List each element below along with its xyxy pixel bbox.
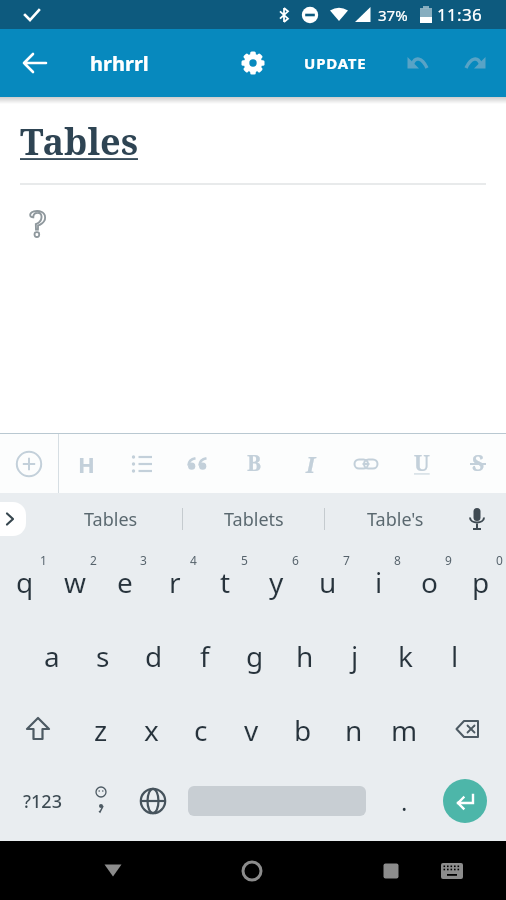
button[interactable] [0,502,26,536]
staticText: S [472,449,485,478]
staticText: p [472,563,490,601]
button[interactable] [338,434,394,493]
staticText: B [247,449,262,478]
button[interactable]: y [251,545,302,619]
staticText: Tables [84,507,138,532]
button[interactable]: u [302,545,353,619]
button[interactable]: l [430,619,480,693]
button[interactable]: g [230,619,280,693]
button[interactable]: b [277,693,328,767]
staticText: b [294,711,312,749]
button[interactable]: S [450,434,506,493]
button[interactable]: p [455,545,506,619]
button[interactable] [432,851,472,891]
staticText: f [200,637,210,675]
staticText: hrhrrl [90,50,149,77]
staticText: U [414,449,430,478]
button[interactable]: d [128,619,179,693]
staticText: 4 [190,552,197,568]
button[interactable]: z [76,693,126,767]
staticText: h [296,637,314,675]
button[interactable]: B [226,434,282,493]
button[interactable] [0,434,58,493]
button[interactable] [0,693,76,767]
button[interactable] [85,843,141,899]
staticText: t [220,563,231,601]
button[interactable]: k [380,619,430,693]
button[interactable]: c [176,693,226,767]
staticText: 11:36 [437,3,482,26]
staticText: 7 [343,552,350,568]
button[interactable]: i [353,545,404,619]
staticText: 2 [90,552,97,568]
button[interactable]: ?123 [14,764,70,838]
button[interactable]: . [385,764,423,838]
button[interactable]: UPDATE [291,41,379,85]
button[interactable] [12,40,58,86]
staticText: i [375,563,383,601]
button[interactable]: w [50,545,100,619]
button[interactable] [114,434,170,493]
staticText: d [145,637,163,675]
staticText: n [345,711,363,749]
button[interactable]: t [200,545,251,619]
button[interactable] [80,764,122,838]
button[interactable] [224,843,280,899]
button[interactable]: H [59,434,114,493]
button[interactable] [170,434,226,493]
button[interactable] [430,693,506,767]
staticText: z [94,711,108,749]
staticText: 5 [241,552,248,568]
button[interactable]: o [404,545,455,619]
button[interactable]: h [280,619,330,693]
button[interactable]: v [226,693,277,767]
button[interactable]: Tablets [183,493,324,545]
button[interactable] [395,41,439,85]
button[interactable] [363,843,419,899]
staticText: q [16,563,34,601]
staticText: 37% [378,5,408,25]
staticText: Table's [367,507,424,532]
staticText: UPDATE [304,53,367,73]
staticText: y [269,563,284,601]
staticText: 6 [292,552,299,568]
button[interactable] [460,502,494,536]
button[interactable]: Table's [325,493,466,545]
button[interactable]: a [26,619,77,693]
staticText: 0 [496,552,503,568]
button[interactable]: r [150,545,200,619]
staticText: k [398,637,413,675]
button[interactable]: U [394,434,450,493]
button[interactable]: j [330,619,380,693]
button[interactable]: m [379,693,430,767]
staticText: 9 [445,552,452,568]
button[interactable]: n [328,693,379,767]
staticText: e [117,563,133,601]
staticText: l [451,637,459,675]
button[interactable] [130,764,176,838]
button[interactable]: s [77,619,128,693]
button[interactable]: x [126,693,176,767]
button[interactable]: Tables [40,493,182,545]
staticText: Tablets [224,507,284,532]
staticText: s [96,637,110,675]
staticText: ?123 [23,789,62,814]
staticText: w [64,563,87,601]
button[interactable] [454,41,498,85]
staticText: j [351,637,359,675]
staticText: r [169,563,181,601]
staticText: o [421,563,438,601]
button[interactable]: f [179,619,230,693]
staticText: H [78,449,95,479]
button[interactable]: I [282,434,338,493]
button[interactable]: q [0,545,50,619]
staticText: Tables [20,117,138,166]
button[interactable] [443,779,487,823]
button[interactable]: e [100,545,150,619]
staticText: x [144,711,159,749]
staticText: c [194,711,208,749]
staticText: I [306,449,315,479]
button[interactable] [231,41,275,85]
staticText: g [246,637,264,675]
